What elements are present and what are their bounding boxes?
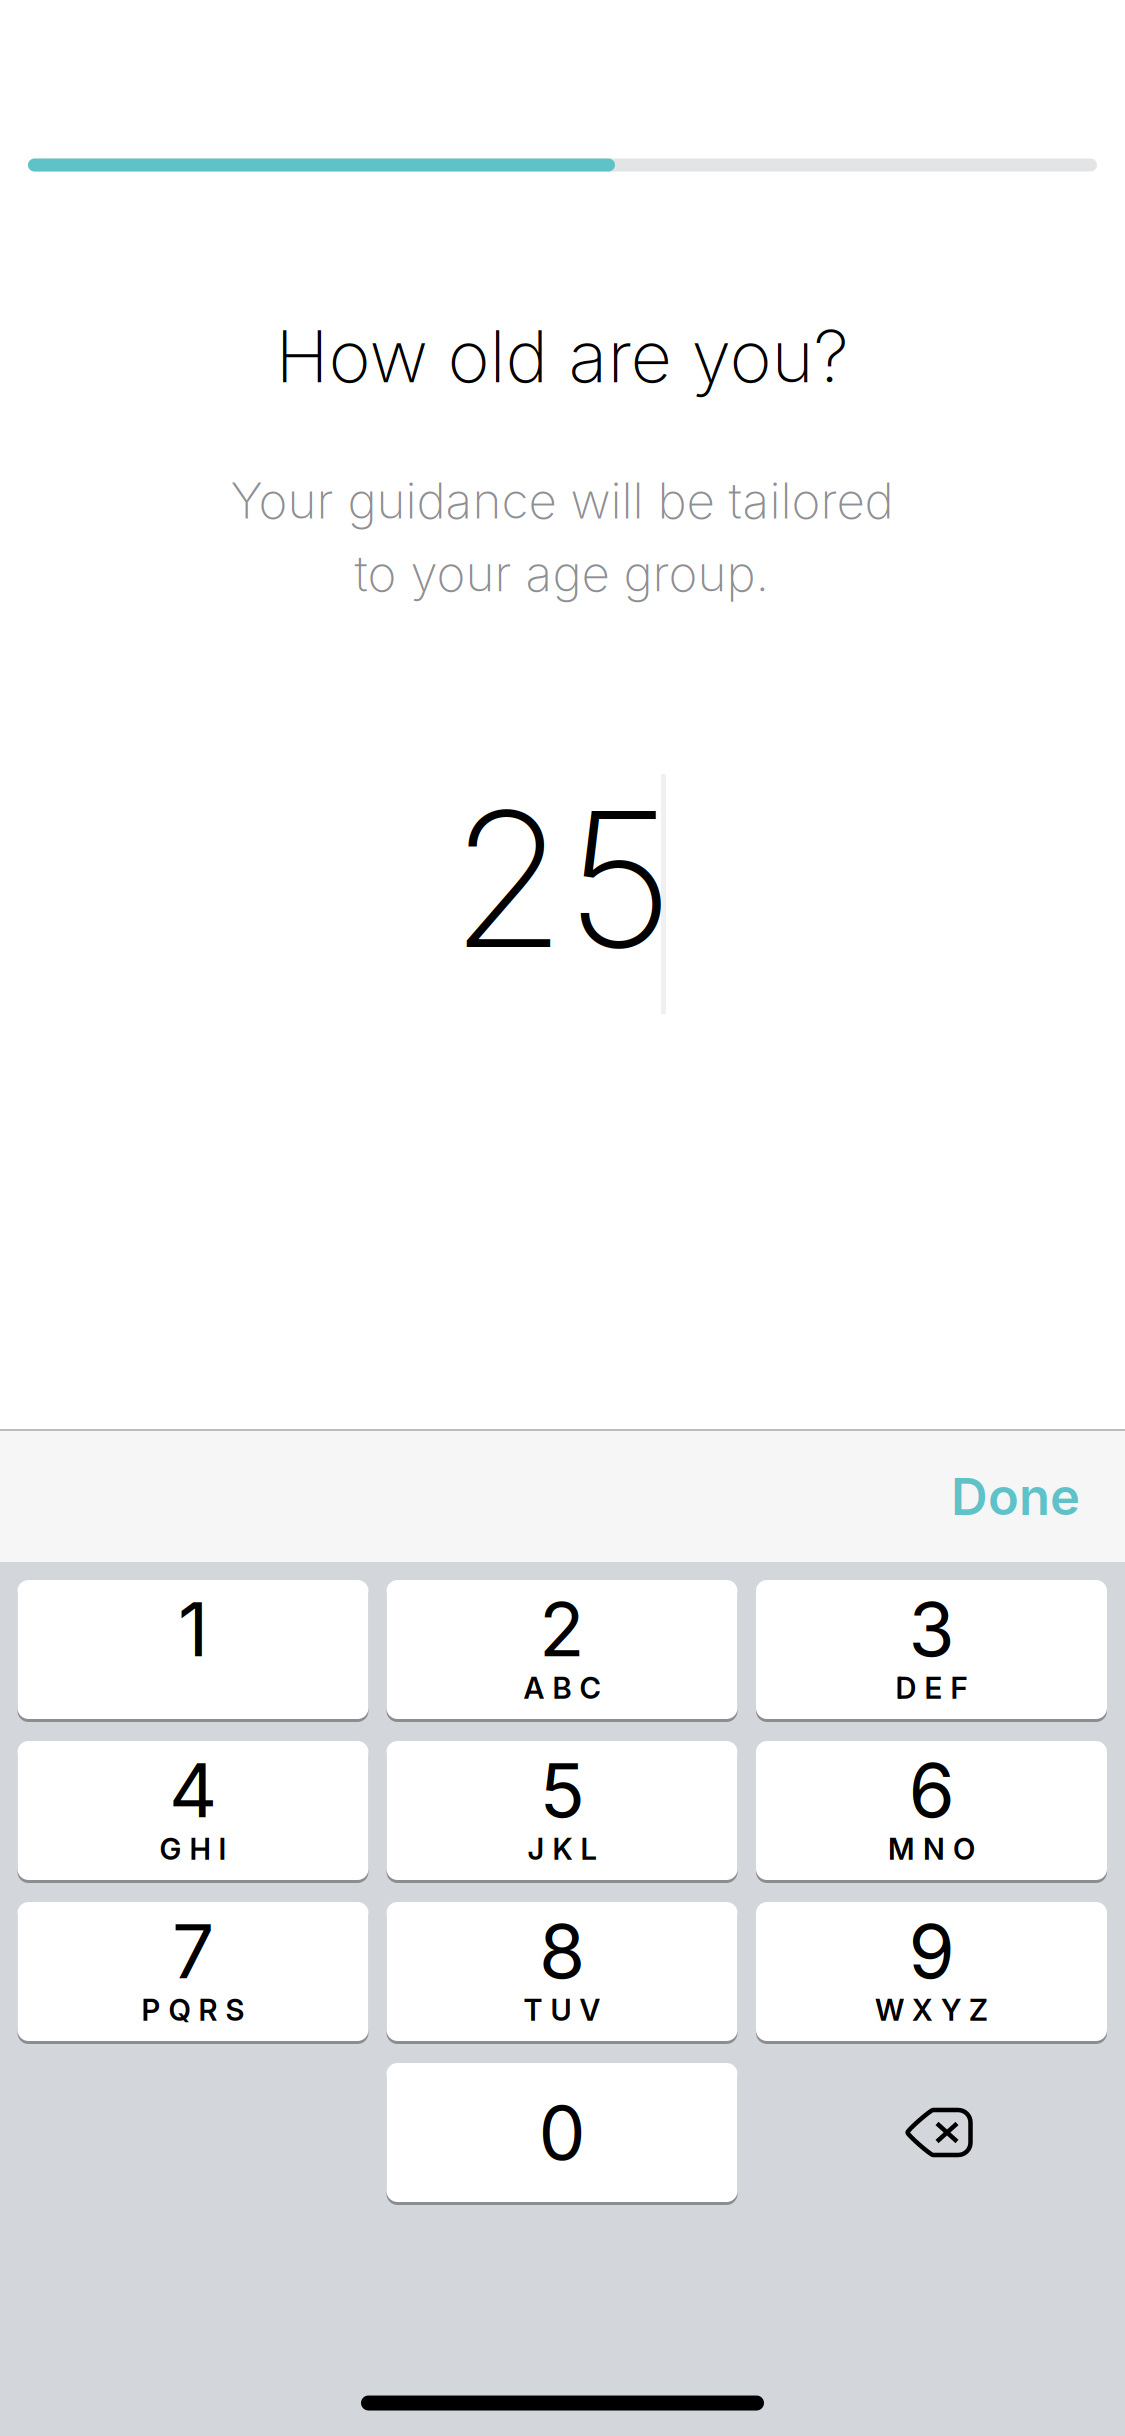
staticText: 5 xyxy=(539,1745,584,1835)
staticText: DEF xyxy=(895,1670,967,1706)
button[interactable]: 8 xyxy=(386,1902,737,2041)
staticText: 1 xyxy=(178,1584,208,1674)
staticText: MNO xyxy=(888,1831,975,1867)
staticText: TUV xyxy=(523,1992,600,2028)
staticText: 3 xyxy=(908,1584,954,1674)
button[interactable]: 2 xyxy=(386,1580,737,1719)
staticText: GHI xyxy=(159,1831,226,1867)
button[interactable]: Done xyxy=(915,1432,1116,1561)
button[interactable]: 3 xyxy=(756,1580,1107,1719)
staticText: 2 xyxy=(539,1584,585,1674)
staticText: ABC xyxy=(523,1670,600,1706)
staticText: to your age group. xyxy=(354,543,769,603)
button[interactable]: 0 xyxy=(386,2063,737,2202)
staticText: 9 xyxy=(908,1906,954,1996)
staticText: JKL xyxy=(527,1831,596,1867)
button[interactable]: 7 xyxy=(17,1902,368,2041)
staticText: 0 xyxy=(538,2087,585,2178)
staticText: Done xyxy=(951,1466,1080,1527)
staticText: 6 xyxy=(908,1745,954,1835)
button[interactable]: 6 xyxy=(756,1741,1107,1880)
staticText: 25 xyxy=(450,766,673,992)
staticText: 7 xyxy=(172,1906,214,1996)
button[interactable]: 9 xyxy=(756,1902,1107,2041)
button[interactable]: 1 xyxy=(17,1580,368,1719)
staticText: PQRS xyxy=(141,1992,244,2028)
staticText: 8 xyxy=(539,1906,585,1996)
button[interactable]: 5 xyxy=(386,1741,737,1880)
staticText: Your guidance will be tailored xyxy=(230,471,893,530)
button[interactable]: 4 xyxy=(17,1741,368,1880)
staticText: WXYZ xyxy=(875,1992,988,2028)
button[interactable]: Delete xyxy=(756,2063,1107,2202)
staticText: 4 xyxy=(169,1745,217,1835)
staticText: How old are you? xyxy=(275,312,848,399)
